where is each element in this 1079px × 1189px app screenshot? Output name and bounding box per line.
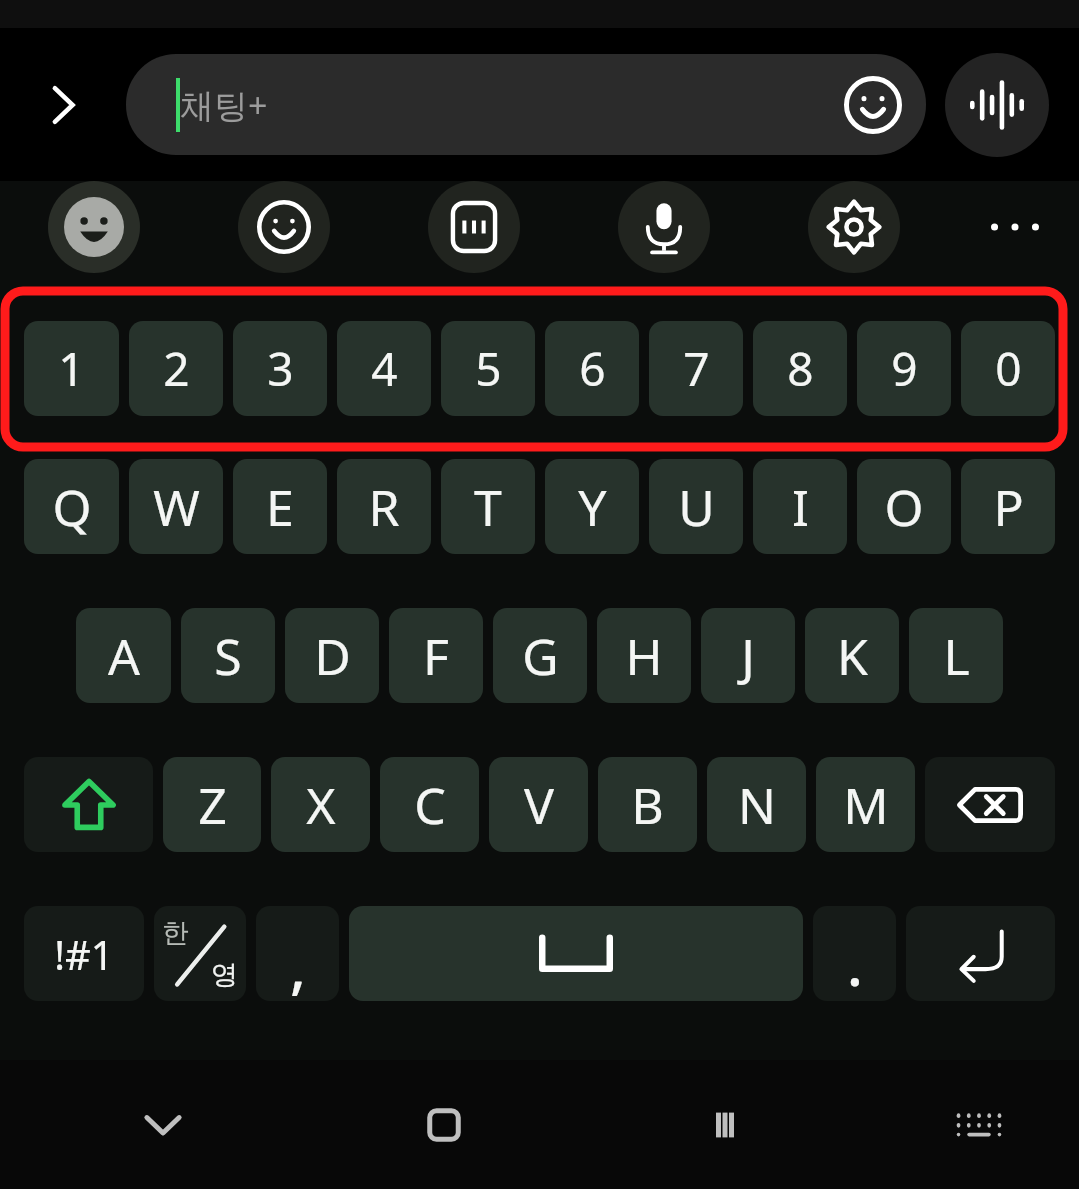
button[interactable]: A [76, 608, 171, 703]
button[interactable]: Space [349, 906, 803, 1001]
staticText: D [314, 622, 351, 690]
button[interactable]: Backspace [925, 757, 1055, 852]
button[interactable]: D [285, 608, 379, 703]
button[interactable]: 5 [441, 321, 535, 416]
button[interactable]: U [649, 459, 743, 554]
staticText: 8 [787, 337, 814, 400]
staticText: Y [578, 473, 607, 541]
staticText: 0 [995, 337, 1022, 400]
staticText: F [423, 622, 449, 690]
button[interactable]: Keyboard settings [808, 181, 900, 273]
staticText: 영 [211, 958, 238, 992]
button[interactable]: R [337, 459, 431, 554]
staticText: !#1 [54, 927, 114, 981]
button[interactable]: Shift [24, 757, 153, 852]
button[interactable]: V [489, 757, 588, 852]
button[interactable]: C [380, 757, 479, 852]
staticText: Q [52, 473, 92, 541]
button[interactable]: F [389, 608, 483, 703]
button[interactable]: Recent apps [677, 1077, 773, 1173]
button[interactable]: K [805, 608, 899, 703]
staticText: 3 [267, 337, 294, 400]
button[interactable]: Y [545, 459, 639, 554]
staticText: C [414, 771, 446, 839]
button[interactable]: Home [396, 1077, 492, 1173]
button[interactable]: Voice input [945, 53, 1049, 157]
button[interactable]: 2 [129, 321, 223, 416]
button[interactable]: X [271, 757, 370, 852]
button[interactable]: GIF [428, 181, 520, 273]
staticText: I [792, 473, 809, 541]
button[interactable]: P [961, 459, 1055, 554]
staticText: , [290, 926, 306, 1001]
button[interactable]: M [816, 757, 915, 852]
staticText: K [837, 622, 868, 690]
staticText: A [108, 622, 140, 690]
staticText: U [678, 473, 715, 541]
staticText: 5 [475, 337, 502, 400]
staticText: L [943, 622, 970, 690]
button[interactable]: 0 [961, 321, 1055, 416]
button[interactable]: E [233, 459, 327, 554]
staticText: H [625, 622, 663, 690]
button[interactable]: 1 [24, 321, 119, 416]
button[interactable]: 4 [337, 321, 431, 416]
staticText: P [993, 473, 1024, 541]
staticText: 1 [58, 337, 85, 400]
button[interactable]: 9 [857, 321, 951, 416]
button[interactable]: H [597, 608, 691, 703]
staticText: G [522, 622, 559, 690]
button[interactable]: 8 [753, 321, 847, 416]
staticText: J [741, 622, 755, 690]
staticText: 4 [371, 337, 398, 400]
staticText: V [524, 771, 554, 839]
button[interactable]: Enter [906, 906, 1055, 1001]
button[interactable]: Voice typing [618, 181, 710, 273]
button[interactable]: 7 [649, 321, 743, 416]
button[interactable]: I [753, 459, 847, 554]
staticText: 9 [891, 337, 918, 400]
staticText: N [738, 771, 776, 839]
button[interactable]: Emoji keyboard [48, 181, 140, 273]
button[interactable]: G [493, 608, 587, 703]
staticText: 2 [163, 337, 190, 400]
button[interactable]: B [598, 757, 697, 852]
button[interactable]: T [441, 459, 535, 554]
button[interactable]: Hide keyboard [115, 1077, 211, 1173]
button[interactable]: J [701, 608, 795, 703]
button[interactable]: . [813, 906, 896, 1001]
button[interactable]: W [129, 459, 223, 554]
button[interactable]: S [181, 608, 275, 703]
staticText: 한 [162, 916, 189, 950]
staticText: X [306, 771, 336, 839]
staticText: O [884, 473, 924, 541]
button[interactable]: L [909, 608, 1003, 703]
staticText: E [266, 473, 294, 541]
staticText: . [847, 924, 863, 1001]
staticText: Z [198, 771, 227, 839]
button[interactable]: Q [24, 459, 119, 554]
staticText: S [214, 622, 242, 690]
button[interactable]: Change keyboard [931, 1077, 1027, 1173]
button[interactable]: Emoji [830, 62, 916, 148]
button[interactable]: Z [163, 757, 261, 852]
button[interactable]: 6 [545, 321, 639, 416]
staticText: T [474, 473, 502, 541]
button[interactable]: !#1 [24, 906, 144, 1001]
staticText: 채팅+ [180, 82, 268, 128]
button[interactable]: O [857, 459, 951, 554]
staticText: R [368, 473, 400, 541]
staticText: 6 [579, 337, 606, 400]
button[interactable]: , [256, 906, 339, 1001]
button[interactable]: 채팅+ [126, 54, 926, 155]
button[interactable]: 3 [233, 321, 327, 416]
button[interactable]: Expand toolbar [0, 28, 126, 181]
button[interactable]: Stickers [238, 181, 330, 273]
button[interactable]: More options [972, 184, 1058, 270]
staticText: W [153, 473, 200, 541]
staticText: B [631, 771, 664, 839]
button[interactable]: Korean English toggle [154, 906, 246, 1001]
staticText: 7 [683, 337, 710, 400]
staticText: M [843, 771, 889, 839]
button[interactable]: N [707, 757, 806, 852]
